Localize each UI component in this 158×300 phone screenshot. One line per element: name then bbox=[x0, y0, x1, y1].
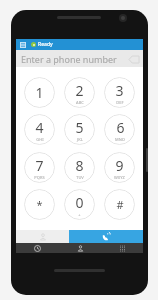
button[interactable]: Call bbox=[69, 230, 143, 243]
staticText: DEF bbox=[116, 100, 124, 105]
staticText: WXYZ bbox=[114, 175, 125, 180]
staticText: + bbox=[78, 212, 81, 217]
staticText: ABC bbox=[76, 100, 84, 105]
button[interactable]: Recents bbox=[16, 243, 59, 253]
staticText: 8 bbox=[75, 156, 84, 175]
staticText: TUV bbox=[76, 175, 84, 180]
staticText: 2 bbox=[75, 81, 84, 100]
button[interactable]: Contacts bbox=[59, 243, 101, 253]
button[interactable]: 2 bbox=[64, 77, 95, 108]
button[interactable]: * bbox=[24, 189, 55, 220]
button[interactable]: 0 bbox=[64, 189, 95, 220]
staticText: GHI bbox=[36, 137, 44, 142]
button[interactable]: Enter a phone number bbox=[16, 50, 143, 67]
button[interactable]: 3 bbox=[104, 77, 135, 108]
staticText: 0 bbox=[75, 193, 84, 212]
button[interactable]: 6 bbox=[104, 114, 135, 145]
staticText: MNO bbox=[115, 137, 125, 142]
button[interactable]: Menu bbox=[19, 41, 27, 49]
staticText: 4 bbox=[35, 118, 44, 137]
staticText: Enter a phone number bbox=[21, 53, 117, 65]
button[interactable]: # bbox=[104, 189, 135, 220]
button[interactable]: 8 bbox=[64, 152, 95, 183]
staticText: Ready bbox=[38, 41, 53, 48]
staticText: JKL bbox=[77, 137, 83, 142]
staticText: * bbox=[36, 197, 43, 212]
staticText: PQRS bbox=[34, 175, 45, 180]
button[interactable]: 9 bbox=[104, 152, 135, 183]
button[interactable]: 7 bbox=[24, 152, 55, 183]
button[interactable]: 1 bbox=[24, 77, 55, 108]
staticText: 7 bbox=[35, 156, 44, 175]
button[interactable]: 4 bbox=[24, 114, 55, 145]
button[interactable]: Backspace bbox=[127, 54, 140, 64]
staticText: 1 bbox=[35, 83, 44, 102]
staticText: 9 bbox=[115, 156, 124, 175]
staticText: 5 bbox=[75, 118, 84, 137]
staticText: # bbox=[116, 197, 124, 212]
button[interactable]: Dialpad bbox=[101, 243, 143, 253]
staticText: 6 bbox=[116, 118, 125, 137]
button[interactable]: 5 bbox=[64, 114, 95, 145]
staticText: 3 bbox=[115, 81, 124, 100]
